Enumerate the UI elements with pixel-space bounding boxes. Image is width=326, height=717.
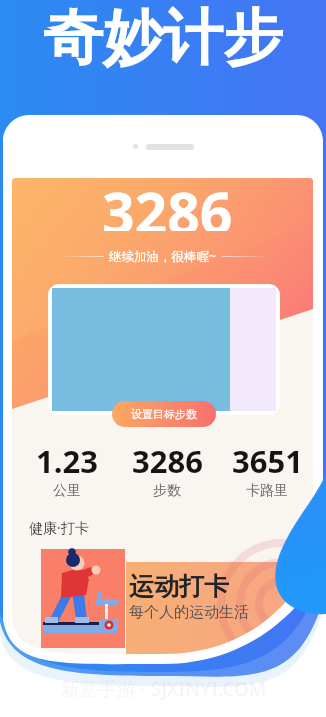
staticText: 新意手游 · SJXINYI.COM: [60, 676, 267, 702]
staticText: 设置目标步数: [131, 407, 197, 421]
staticText: 运动打卡: [129, 571, 229, 602]
staticText: 公里: [53, 482, 81, 500]
staticText: 继续加油，很棒喔~: [109, 248, 217, 265]
staticText: 步数: [153, 482, 181, 500]
staticText: 3286: [132, 440, 203, 482]
staticText: 每个人的运动生活: [129, 603, 249, 622]
staticText: 3651: [232, 440, 303, 482]
button[interactable]: 设置目标步数: [112, 401, 216, 427]
staticText: 卡路里: [246, 482, 288, 500]
staticText: 奇妙计步: [43, 0, 283, 76]
button[interactable]: 运动打卡: [126, 562, 313, 658]
staticText: 1.23: [36, 440, 98, 482]
button[interactable]: [48, 284, 280, 415]
staticText: 3286: [102, 178, 233, 231]
staticText: 健康·打卡: [29, 518, 89, 537]
